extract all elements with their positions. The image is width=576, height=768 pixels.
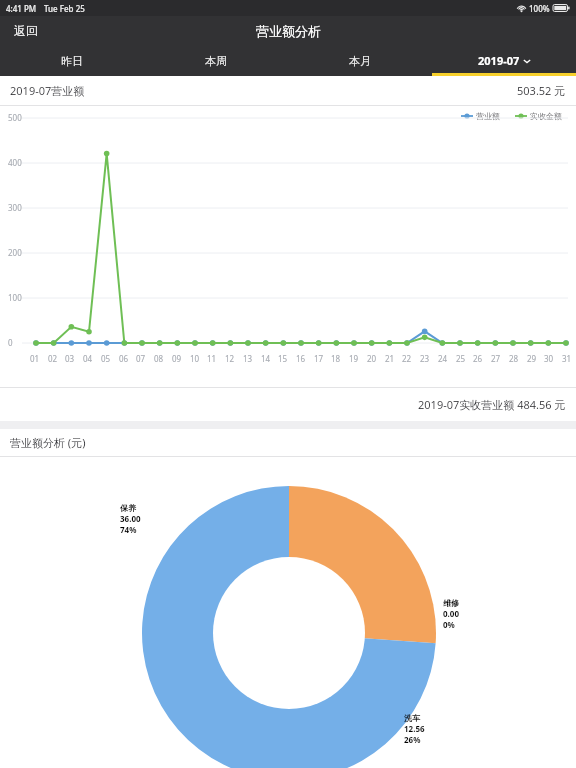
staticText: 26% — [404, 734, 421, 745]
staticText: 28 — [509, 353, 519, 364]
staticText: 100% — [529, 3, 550, 14]
staticText: 07 — [136, 353, 146, 364]
staticText: 06 — [119, 353, 129, 364]
staticText: 洗车 — [404, 713, 420, 723]
staticText: 05 — [101, 353, 111, 364]
staticText: 维修 — [443, 598, 459, 608]
staticText: 0% — [443, 619, 455, 630]
staticText: 31 — [562, 353, 572, 364]
staticText: 实收金额 — [530, 111, 562, 121]
staticText: 02 — [48, 353, 58, 364]
staticText: 21 — [385, 353, 395, 364]
staticText: 营业额分析 — [256, 23, 321, 39]
button[interactable]: 本周 — [144, 45, 288, 76]
staticText: 昨日 — [61, 54, 83, 68]
staticText: 23 — [420, 353, 430, 364]
staticText: Tue Feb 25 — [44, 3, 85, 14]
staticText: 2019-07 — [478, 53, 520, 68]
staticText: 04 — [83, 353, 93, 364]
staticText: 本月 — [349, 54, 371, 68]
staticText: 29 — [527, 353, 537, 364]
staticText: 4:41 PM — [6, 3, 37, 14]
staticText: 2019-07实收营业额 484.56 元 — [418, 397, 566, 412]
button[interactable]: 昨日 — [0, 45, 144, 76]
button[interactable]: 2019-07 — [432, 45, 576, 76]
staticText: 本周 — [205, 54, 227, 68]
staticText: 返回 — [14, 23, 38, 38]
staticText: 09 — [172, 353, 182, 364]
staticText: 营业额分析 (元) — [10, 435, 86, 450]
staticText: 22 — [402, 353, 412, 364]
button[interactable]: 返回 — [0, 16, 52, 45]
staticText: 03 — [65, 353, 75, 364]
staticText: 12.56 — [404, 723, 425, 734]
staticText: 400 — [8, 157, 22, 168]
staticText: 11 — [207, 353, 217, 364]
staticText: 08 — [154, 353, 164, 364]
staticText: 503.52 元 — [517, 83, 566, 98]
staticText: 500 — [8, 112, 22, 123]
staticText: 19 — [349, 353, 359, 364]
staticText: 01 — [30, 353, 40, 364]
staticText: 24 — [438, 353, 448, 364]
staticText: 300 — [8, 202, 22, 213]
staticText: 30 — [544, 353, 554, 364]
staticText: 0 — [8, 337, 13, 348]
staticText: 0.00 — [443, 608, 459, 619]
staticText: 36.00 — [120, 513, 141, 524]
button[interactable]: 本月 — [288, 45, 432, 76]
staticText: 74% — [120, 524, 137, 535]
staticText: 20 — [367, 353, 377, 364]
staticText: 14 — [261, 353, 271, 364]
staticText: 营业额 — [476, 111, 500, 121]
staticText: 16 — [296, 353, 306, 364]
staticText: 12 — [225, 353, 235, 364]
staticText: 保养 — [120, 503, 136, 513]
staticText: 2019-07营业额 — [10, 83, 85, 98]
staticText: 200 — [8, 247, 22, 258]
staticText: 25 — [456, 353, 466, 364]
staticText: 13 — [243, 353, 253, 364]
staticText: 15 — [278, 353, 288, 364]
staticText: 17 — [314, 353, 324, 364]
staticText: 100 — [8, 292, 22, 303]
staticText: 26 — [473, 353, 483, 364]
staticText: 10 — [190, 353, 200, 364]
staticText: 18 — [331, 353, 341, 364]
staticText: 27 — [491, 353, 501, 364]
